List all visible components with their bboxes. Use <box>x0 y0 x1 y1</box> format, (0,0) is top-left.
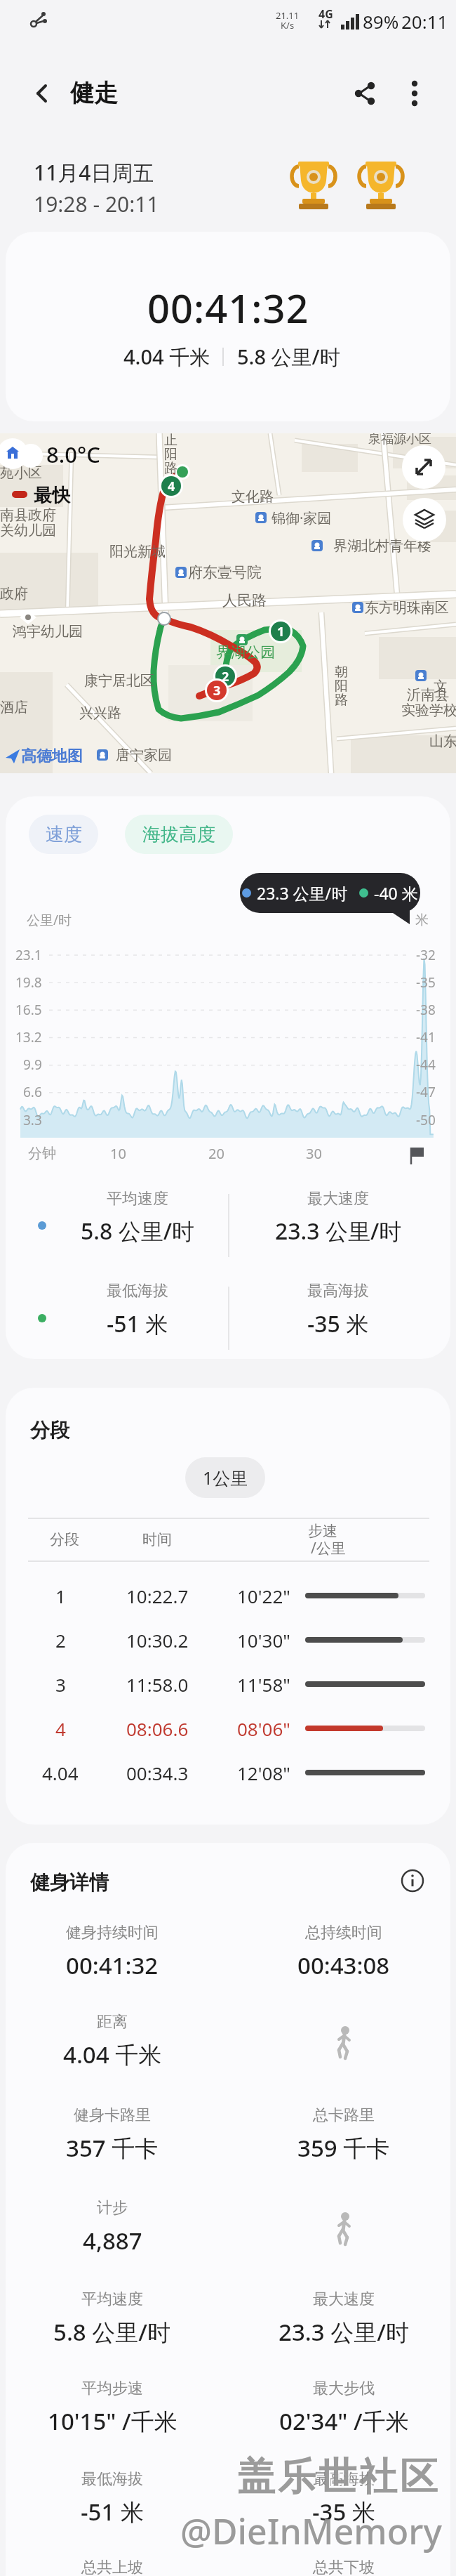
staticText: 最快 <box>34 484 70 507</box>
staticText: 距离 <box>97 2012 128 2032</box>
staticText: -40 米 <box>374 882 418 904</box>
staticText: 5.8 公里/时 <box>53 2316 171 2348</box>
staticText: 4.04 千米 <box>123 343 210 371</box>
staticText: 3 <box>55 1672 66 1697</box>
button[interactable] <box>398 77 431 110</box>
staticText: 阳 <box>164 446 177 463</box>
staticText: 关幼儿园 <box>0 522 56 539</box>
staticText: 5.8 公里/时 <box>237 343 340 371</box>
staticText: 11:58.0 <box>126 1672 189 1697</box>
staticText: 文化路 <box>232 488 274 506</box>
staticText: 21.11 <box>276 9 300 22</box>
staticText: 1 <box>55 1584 66 1608</box>
staticText: 公里/时 <box>27 911 72 929</box>
staticText: 4.04 千米 <box>63 2039 162 2070</box>
staticText: -35 米 <box>307 1308 369 1339</box>
staticText: 4 <box>168 478 175 495</box>
staticText: 20:11 <box>401 9 448 34</box>
staticText: 4 <box>55 1716 66 1741</box>
button[interactable] <box>348 77 382 110</box>
staticText: 止 <box>164 433 177 449</box>
staticText: 山东 <box>429 732 456 750</box>
staticText: 唐宁家园 <box>116 747 172 764</box>
staticText: 盖乐世社区 <box>237 2455 441 2502</box>
staticText: 鸿宇幼儿园 <box>13 623 83 640</box>
button[interactable]: 1公里 <box>185 1457 265 1498</box>
staticText: 平均步速 <box>81 2379 143 2398</box>
button[interactable] <box>24 75 60 112</box>
staticText: 健身持续时间 <box>66 1923 159 1943</box>
staticText: 11月4日周五 <box>34 158 154 187</box>
staticText: 4,887 <box>83 2225 142 2256</box>
staticText: 路 <box>335 692 348 709</box>
staticText: 海拔高度 <box>142 823 215 846</box>
staticText: -35 米 <box>312 2496 375 2528</box>
staticText: 速度 <box>46 823 82 846</box>
staticText: 东方明珠南区 <box>365 599 449 617</box>
staticText: 00:41:32 <box>147 281 309 334</box>
staticText: 兴兴路 <box>79 704 121 722</box>
button[interactable] <box>403 498 446 541</box>
staticText: 朝 <box>335 664 348 681</box>
staticText: 23.3 公里/时 <box>275 1216 402 1247</box>
staticText: 最大速度 <box>307 1189 369 1209</box>
staticText: 10:22.7 <box>126 1584 189 1608</box>
staticText: 3.3 <box>23 1111 42 1129</box>
staticText: -51 米 <box>81 2496 144 2528</box>
staticText: 平均速度 <box>107 1189 168 1209</box>
staticText: 最低海拔 <box>81 2469 143 2489</box>
staticText: 分段 <box>30 1418 69 1443</box>
staticText: 357 千卡 <box>66 2132 159 2164</box>
staticText: 总卡路里 <box>313 2105 375 2125</box>
staticText: 5.8 公里/时 <box>81 1216 194 1247</box>
staticText: 13.2 <box>15 1028 42 1046</box>
button[interactable] <box>402 445 445 489</box>
staticText: 实验学校 <box>401 702 456 719</box>
staticText: 08'06" <box>237 1716 290 1741</box>
staticText: 19.8 <box>15 973 42 992</box>
staticText: 2 <box>55 1628 66 1652</box>
staticText: -41 <box>416 1028 436 1046</box>
staticText: 最低海拔 <box>107 1281 168 1301</box>
staticText: 阳 <box>335 678 348 695</box>
staticText: @DieInMemory <box>182 2509 443 2556</box>
staticText: 健身详情 <box>30 1870 109 1895</box>
staticText: 00:41:32 <box>66 1950 159 1981</box>
staticText: K/s <box>281 19 295 32</box>
staticText: 南县政府 <box>0 506 56 524</box>
staticText: 16.5 <box>15 1001 42 1019</box>
staticText: 20 <box>208 1144 224 1163</box>
staticText: 12'08" <box>237 1761 290 1785</box>
button[interactable] <box>393 1861 432 1900</box>
staticText: /公里 <box>311 1538 346 1558</box>
staticText: 1 <box>277 623 285 640</box>
staticText: 分钟 <box>28 1145 56 1162</box>
staticText: -47 <box>416 1083 436 1101</box>
staticText: 30 <box>306 1144 322 1163</box>
staticText: 健身卡路里 <box>74 2105 151 2125</box>
staticText: 步速 <box>308 1522 337 1540</box>
staticText: 阳光新城 <box>109 543 166 560</box>
staticText: -35 <box>416 973 436 992</box>
staticText: 00:34.3 <box>126 1761 189 1785</box>
button[interactable]: 速度 <box>29 815 98 854</box>
staticText: 10:30.2 <box>126 1628 189 1652</box>
staticText: 08:06.6 <box>126 1716 189 1741</box>
staticText: 23.3 公里/时 <box>279 2316 409 2348</box>
staticText: -44 <box>416 1056 436 1074</box>
staticText: -50 <box>416 1111 436 1129</box>
staticText: 359 千卡 <box>297 2132 390 2164</box>
staticText: 政府 <box>0 585 28 603</box>
staticText: 89% <box>363 9 399 34</box>
staticText: 泉福源小区 <box>368 433 431 447</box>
staticText: 23.3 公里/时 <box>257 882 348 904</box>
button[interactable]: 海拔高度 <box>125 815 233 854</box>
staticText: @DieInMemory <box>180 2507 442 2555</box>
staticText: 11'58" <box>237 1672 290 1697</box>
staticText: 米 <box>415 912 429 928</box>
staticText: 10 <box>110 1144 126 1163</box>
staticText: -51 米 <box>107 1308 168 1339</box>
staticText: 10'15" /千米 <box>48 2405 177 2437</box>
staticText: 00:43:08 <box>297 1950 390 1981</box>
staticText: 2 <box>222 668 229 685</box>
